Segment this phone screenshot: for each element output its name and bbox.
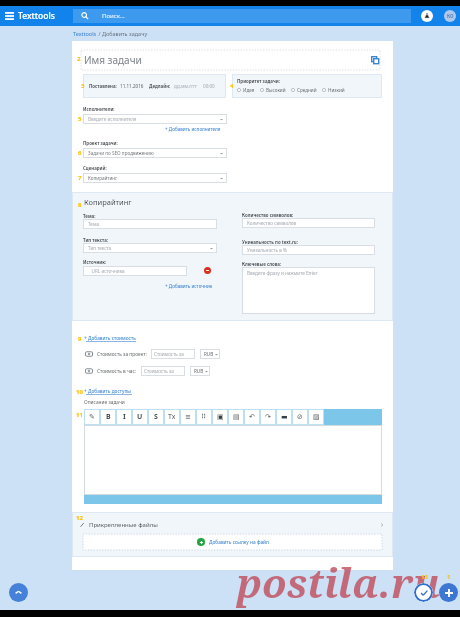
button[interactable]: Scroll to top — [9, 583, 28, 602]
button[interactable]: Tool 14 — [308, 409, 324, 425]
button[interactable]: Tool 3 — [132, 409, 148, 425]
button[interactable]: Tool 11 — [260, 409, 276, 425]
button[interactable]: Тип текста — [83, 243, 217, 253]
staticText: Задачи по SEO продвижению — [88, 150, 154, 156]
button[interactable]: Стоимость за — [151, 349, 195, 359]
staticText: 13 — [421, 573, 428, 581]
button[interactable]: Копирайтинг — [83, 173, 227, 183]
staticText: Стоимость за — [144, 368, 174, 374]
button[interactable]: + Добавить исполнителя — [165, 126, 221, 132]
button[interactable]: Введите исполнителя — [83, 114, 227, 124]
staticText: Копирайтинг — [88, 175, 118, 181]
button[interactable]: Tool 5 — [164, 409, 180, 425]
button[interactable]: Задачи по SEO продвижению — [83, 148, 227, 158]
button[interactable]: + Добавить стоимость — [84, 335, 136, 342]
button[interactable]: Тема — [83, 219, 217, 229]
button[interactable]: Tool 13 — [292, 409, 308, 425]
button[interactable]: RUB — [200, 349, 220, 359]
staticText: 7 — [78, 174, 82, 182]
staticText: I — [123, 412, 126, 422]
button[interactable]: Tool 10 — [244, 409, 260, 425]
button[interactable]: Tool 4 — [148, 409, 164, 425]
staticText: Тема: — [83, 213, 96, 219]
button[interactable]: RUB — [190, 366, 210, 376]
staticText: ▤ — [233, 413, 240, 421]
staticText: Приоритет задачи: — [237, 78, 280, 84]
staticText: S — [154, 412, 158, 422]
button[interactable]: Tool 7 — [196, 409, 212, 425]
staticText: Стоимость в час: — [97, 368, 137, 375]
button[interactable]: + Добавить источник — [165, 283, 213, 289]
staticText: Тип текста — [88, 245, 112, 251]
staticText: Сценарий: — [83, 165, 107, 171]
staticText: postila.ru — [237, 555, 440, 609]
staticText: RUB — [194, 368, 204, 374]
staticText: Идея — [243, 87, 255, 93]
button[interactable]: Высокий — [260, 87, 286, 93]
button[interactable]: Tool 8 — [212, 409, 228, 425]
button[interactable]: Количество символов — [242, 218, 375, 228]
staticText: 3 — [81, 82, 85, 90]
button[interactable]: Прикрепленные файлы — [72, 518, 393, 531]
staticText: RUB — [204, 351, 214, 357]
button[interactable]: Имя задачи — [81, 50, 380, 70]
button[interactable]: Tool 12 — [276, 409, 292, 425]
staticText: Добавить ссылку на файл — [209, 539, 269, 546]
button[interactable]: Tool 2 — [116, 409, 132, 425]
staticText: URL источника — [88, 268, 125, 274]
button[interactable]: Tool 6 — [180, 409, 196, 425]
staticText: 1 — [447, 573, 451, 581]
button[interactable]: Notifications — [421, 10, 433, 22]
staticText: + Добавить доступы — [84, 388, 131, 395]
staticText: ⊘ — [297, 413, 303, 421]
button[interactable]: Низкий — [322, 87, 345, 93]
staticText: Ключевые слова: — [242, 261, 282, 267]
staticText: КО — [447, 13, 454, 19]
button[interactable]: URL источника — [83, 266, 187, 276]
button[interactable]: Add — [439, 583, 458, 602]
button[interactable]: Tasks — [414, 583, 433, 602]
button[interactable]: Texttools — [73, 30, 97, 37]
button[interactable]: Введите фразу и нажмите Enter — [242, 267, 375, 314]
button[interactable]: + Добавить доступы — [84, 388, 131, 395]
staticText: 9 — [78, 335, 82, 343]
button[interactable]: Copy — [368, 53, 382, 67]
button[interactable]: Tool 0 — [84, 409, 100, 425]
staticText: Проект задачи: — [83, 140, 118, 146]
button[interactable] — [84, 425, 382, 495]
staticText: 6 — [78, 149, 82, 157]
button[interactable]: Добавить ссылку на файл — [83, 534, 382, 550]
button[interactable]: Идея — [237, 87, 255, 93]
staticText: Описание задачи — [84, 399, 125, 406]
button[interactable]: Уникальность в % — [242, 245, 375, 255]
button[interactable]: Средний — [291, 87, 317, 93]
button[interactable]: Поиск... — [73, 9, 411, 23]
staticText: 8 — [78, 201, 82, 209]
staticText: Высокий — [266, 87, 286, 93]
staticText: Введите фразу и нажмите Enter — [247, 270, 318, 276]
staticText: Стоимость за проект: — [97, 351, 147, 358]
staticText: ✎ — [89, 413, 95, 421]
staticText: Стоимость за — [154, 351, 184, 357]
staticText: 5 — [78, 115, 82, 123]
button[interactable]: Remove source — [204, 267, 211, 274]
button[interactable]: Tool 9 — [228, 409, 244, 425]
staticText: Копирайтинг — [84, 197, 132, 207]
staticText: Имя задачи — [84, 53, 142, 67]
staticText: Источник: — [83, 259, 107, 265]
staticText: ≡ — [185, 413, 191, 421]
staticText: Тип текста: — [83, 237, 109, 243]
button[interactable]: Tool 1 — [100, 409, 116, 425]
staticText: ↶ — [249, 413, 255, 421]
staticText: / Добавить задачу — [97, 30, 148, 37]
button[interactable]: Menu — [0, 6, 18, 26]
staticText: Низкий — [328, 87, 345, 93]
staticText: ▨ — [313, 413, 320, 421]
staticText: U — [137, 412, 143, 422]
button[interactable]: Profile — [444, 10, 456, 22]
button[interactable]: Стоимость за — [141, 366, 185, 376]
staticText: Количество символов: — [242, 212, 294, 218]
staticText: Поиск... — [102, 12, 125, 20]
staticText: Поставлена: — [89, 83, 117, 89]
staticText: 12 — [76, 514, 83, 522]
